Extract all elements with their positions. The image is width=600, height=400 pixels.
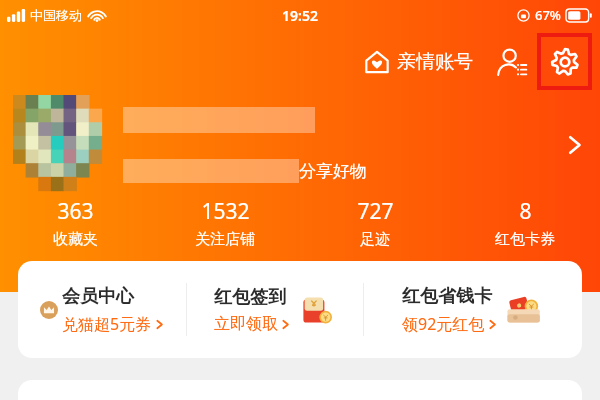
button[interactable]: 1532 xyxy=(150,197,300,249)
staticText: 足迹 xyxy=(360,230,390,249)
staticText: 红包签到 xyxy=(214,286,286,309)
staticText: 中国移动 xyxy=(30,7,82,23)
staticText: 727 xyxy=(357,197,394,226)
staticText: 立即领取 xyxy=(214,314,278,334)
button[interactable]: 亲情账号 xyxy=(359,43,478,81)
staticText: 19:52 xyxy=(282,6,318,25)
button[interactable]: 红包签到 xyxy=(187,261,363,358)
button[interactable]: Open profile xyxy=(551,122,597,168)
button[interactable]: 会员中心 xyxy=(18,261,186,358)
staticText: 红包省钱卡 xyxy=(402,285,492,308)
staticText: 363 xyxy=(57,197,94,226)
button[interactable]: 727 xyxy=(300,197,450,249)
button[interactable]: 红包省钱卡 xyxy=(364,261,582,358)
staticText: 兑猫超5元券 xyxy=(62,313,152,335)
staticText: 1532 xyxy=(201,197,250,226)
staticText: 会员中心 xyxy=(62,285,134,308)
staticText: 红包卡券 xyxy=(495,230,555,249)
staticText: 亲情账号 xyxy=(397,50,473,74)
staticText: 67% xyxy=(535,6,561,24)
button[interactable]: 8 xyxy=(450,197,600,249)
staticText: 分享好物 xyxy=(299,161,367,182)
staticText: 8 xyxy=(519,197,532,226)
button[interactable]: 分享好物 xyxy=(0,93,600,197)
staticText: 收藏夹 xyxy=(53,230,98,249)
button[interactable]: My account list xyxy=(490,40,534,84)
staticText: 领92元红包 xyxy=(402,313,485,335)
button[interactable]: Settings xyxy=(541,37,588,86)
button[interactable]: 363 xyxy=(0,197,150,249)
staticText: 关注店铺 xyxy=(195,230,255,249)
